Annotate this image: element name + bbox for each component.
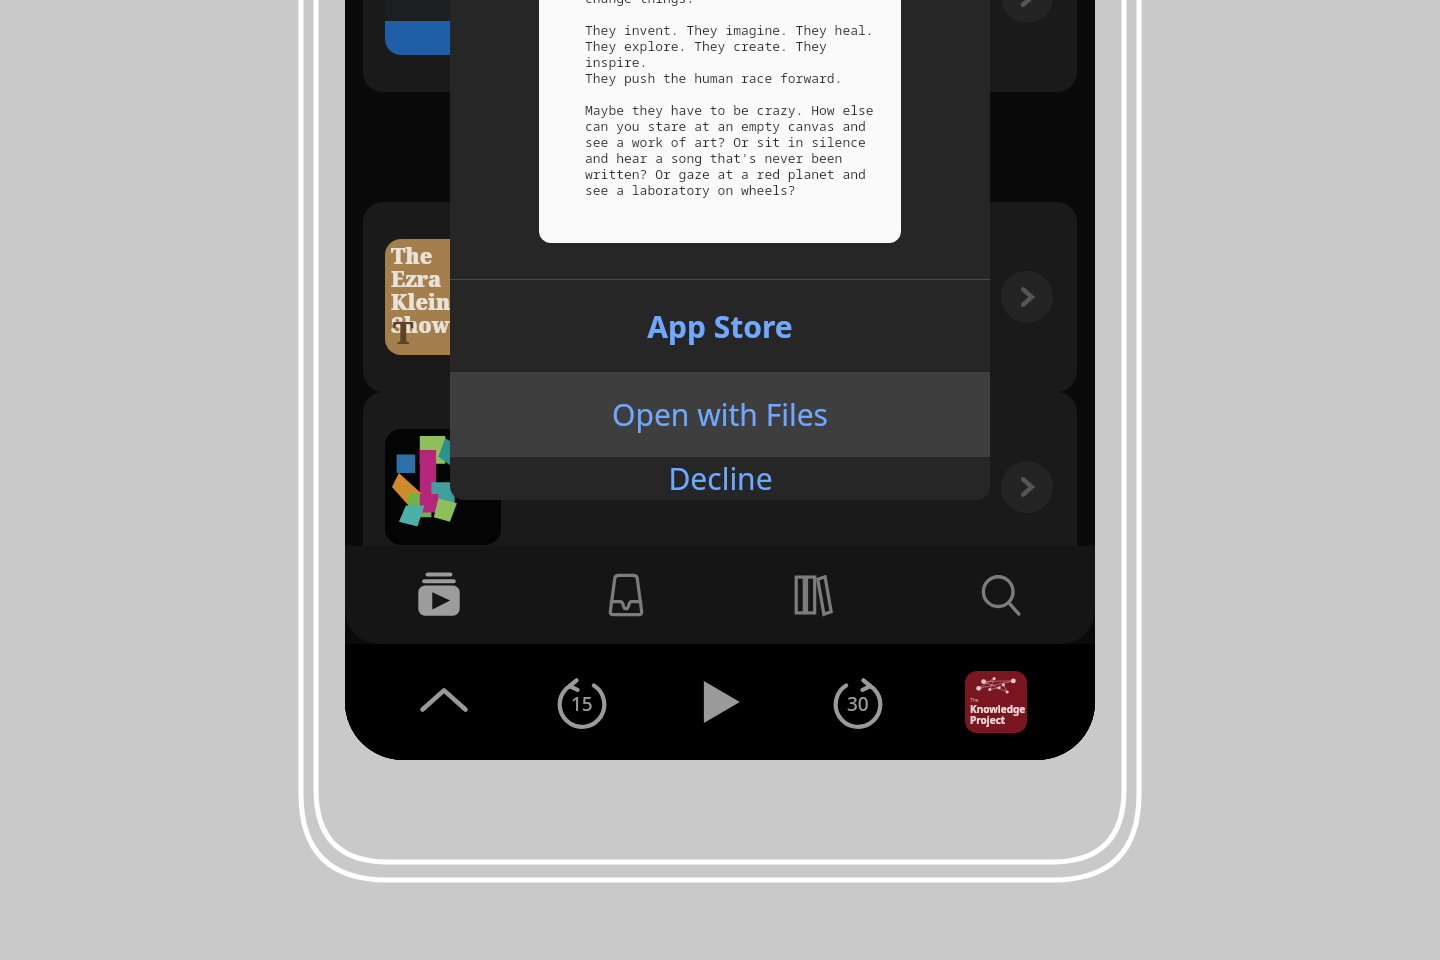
button[interactable]: Search [907,546,1095,644]
button[interactable]: Now playing artwork [927,644,1065,760]
button[interactable]: Decline [450,457,990,500]
button[interactable]: App Store [450,280,990,372]
staticText: Knowledge Project [970,702,1026,727]
button[interactable]: Skip back 15 seconds [513,644,651,760]
button[interactable]: More [1001,0,1053,23]
button[interactable]: BI [363,0,1077,92]
button[interactable]: Listen Now [345,546,532,644]
staticText: 15 [571,691,593,717]
staticText: Decline [668,458,773,499]
button[interactable]: The Ezra Klein Show [363,202,1077,392]
button[interactable]: Skip forward 30 seconds [789,644,927,760]
staticText: 30 [847,691,869,717]
staticText: can't do is ignore them. Because they ch… [585,0,887,199]
button[interactable]: More [1001,461,1053,513]
staticText: T [393,312,414,353]
button[interactable]: Library [719,546,907,644]
staticText: Open with Files [612,394,828,435]
button[interactable]: More [363,392,1077,582]
staticText: App Store [647,306,793,347]
staticText: The [970,697,979,704]
button[interactable]: Play [651,644,789,760]
button[interactable]: Inbox [532,546,719,644]
staticText: The Ezra Klein Show [391,242,451,339]
button[interactable]: Open with Files [450,372,990,457]
button[interactable]: More [1001,271,1053,323]
button[interactable]: Expand player [375,644,513,760]
